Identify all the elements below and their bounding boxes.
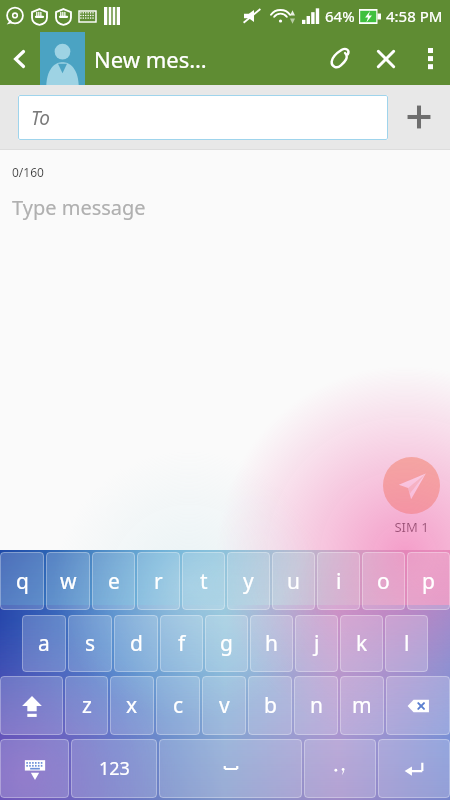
button[interactable]: Period and comma	[304, 739, 376, 798]
button[interactable]: p	[407, 552, 450, 610]
button[interactable]: o	[362, 552, 405, 610]
button[interactable]: k	[340, 615, 383, 672]
button[interactable]: r	[137, 552, 180, 610]
button[interactable]: To	[18, 95, 388, 140]
button[interactable]: q	[0, 552, 44, 610]
button[interactable]: Space	[159, 739, 302, 798]
button[interactable]: y	[227, 552, 270, 610]
button[interactable]: More options	[410, 32, 450, 85]
button[interactable]: n	[294, 676, 338, 735]
staticText: h	[265, 629, 278, 658]
staticText: u	[287, 567, 300, 596]
staticText: i	[336, 567, 342, 596]
staticText: l	[404, 629, 410, 658]
button[interactable]: Add recipient	[388, 85, 450, 149]
staticText: c	[173, 691, 184, 720]
staticText: q	[16, 567, 29, 596]
button[interactable]: Send with SIM 1	[383, 457, 440, 536]
staticText: Type message	[12, 194, 146, 221]
button[interactable]: Discard	[362, 32, 410, 85]
button[interactable]: Hide keyboard	[0, 739, 69, 798]
staticText: x	[126, 691, 138, 720]
button[interactable]: z	[65, 676, 108, 735]
button[interactable]: a	[22, 615, 66, 672]
staticText: To	[31, 105, 50, 131]
button[interactable]: Back	[0, 32, 40, 85]
staticText: j	[314, 629, 320, 658]
staticText: r	[154, 567, 163, 596]
staticText: o	[377, 567, 390, 596]
staticText: 0/160	[12, 164, 44, 180]
staticText: t	[200, 567, 208, 596]
button[interactable]: h	[250, 615, 293, 672]
button[interactable]: f	[160, 615, 203, 672]
staticText: 4:58 PM	[386, 6, 443, 26]
staticText: 123	[99, 756, 130, 781]
button[interactable]: g	[205, 615, 248, 672]
staticText: n	[310, 691, 323, 720]
button[interactable]: v	[202, 676, 246, 735]
button[interactable]: m	[340, 676, 384, 735]
button[interactable]: t	[182, 552, 225, 610]
button[interactable]: j	[295, 615, 338, 672]
staticText: e	[108, 567, 120, 596]
staticText: v	[219, 691, 230, 720]
staticText: s	[85, 629, 96, 658]
button[interactable]: i	[317, 552, 360, 610]
staticText: New mes…	[94, 44, 316, 74]
button[interactable]: Attach	[316, 32, 362, 85]
button[interactable]: d	[114, 615, 158, 672]
staticText: k	[356, 629, 368, 658]
button[interactable]: c	[156, 676, 200, 735]
button[interactable]: Backspace	[386, 676, 450, 735]
staticText: w	[60, 567, 77, 596]
staticText: 64%	[325, 6, 355, 26]
button[interactable]: b	[248, 676, 292, 735]
button[interactable]: l	[385, 615, 428, 672]
button[interactable]: x	[110, 676, 154, 735]
button[interactable]: e	[92, 552, 135, 610]
button[interactable]: Shift	[0, 676, 63, 735]
staticText: f	[178, 629, 186, 658]
staticText: a	[38, 629, 50, 658]
staticText: y	[243, 567, 254, 596]
staticText: SIM 1	[394, 518, 429, 536]
button[interactable]: s	[68, 615, 112, 672]
staticText: d	[130, 629, 143, 658]
button[interactable]: w	[46, 552, 90, 610]
staticText: b	[264, 691, 277, 720]
button[interactable]: 123	[71, 739, 157, 798]
staticText: m	[352, 691, 372, 720]
staticText: p	[422, 567, 435, 596]
staticText: z	[82, 691, 92, 720]
staticText: g	[220, 629, 233, 658]
button[interactable]: Enter	[378, 739, 450, 798]
button[interactable]: u	[272, 552, 315, 610]
